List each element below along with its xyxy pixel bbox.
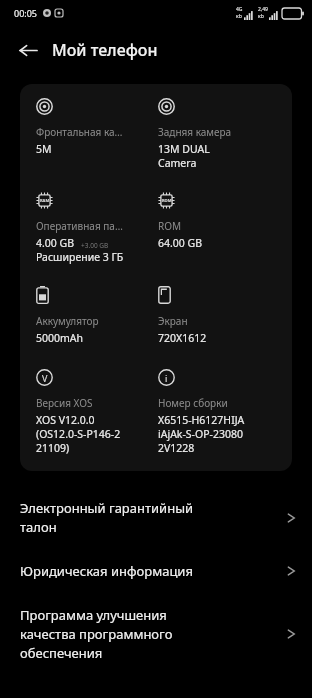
staticText: Аккумулятор [36,314,99,328]
staticText: 64.00 GB [158,236,203,250]
staticText: Оперативная па… [36,219,123,233]
staticText: 5M [36,142,52,156]
staticText: XOS V12.0.0 (OS12.0-S-P146-2 21109) [36,413,121,455]
button[interactable]: Back [8,30,48,70]
staticText: i [165,372,168,384]
staticText: +3.00 GB [81,241,109,250]
staticText: 00:05 [14,7,38,19]
staticText: RAM [40,198,50,203]
staticText: Номер сборки [158,396,228,410]
staticText: Расширение 3 ГБ [36,250,124,264]
staticText: 4.00 GB [36,236,75,250]
staticText: Экран [158,314,188,328]
staticText: 2,49 [258,6,268,13]
staticText: 4G [236,6,243,13]
staticText: 13M DUAL Camera [158,142,210,170]
staticText: Мой телефон [52,39,158,61]
staticText: 720X1612 [158,331,207,345]
staticText: Программа улучшения качества программног… [20,606,279,662]
staticText: Электронный гарантийный талон [20,499,279,536]
staticText: Фронтальная ка… [36,125,123,139]
button[interactable]: Электронный гарантийный талон [0,489,312,546]
staticText: 5000mAh [36,331,84,345]
staticText: ROM [162,198,172,203]
staticText: X6515-H6127HIJA iAjAk-S-OP-23080 2V1228 [158,413,245,455]
staticText: Юридическая информация [20,562,279,580]
staticText: V [42,372,48,384]
button[interactable]: Юридическая информация [0,546,312,596]
staticText: ROM [158,219,182,233]
staticText: Задняя камера [158,125,232,139]
staticText: Версия XOS [36,396,93,410]
staticText: кb [258,13,264,20]
button[interactable]: Программа улучшения качества программног… [0,596,312,672]
staticText: кb [236,13,242,20]
